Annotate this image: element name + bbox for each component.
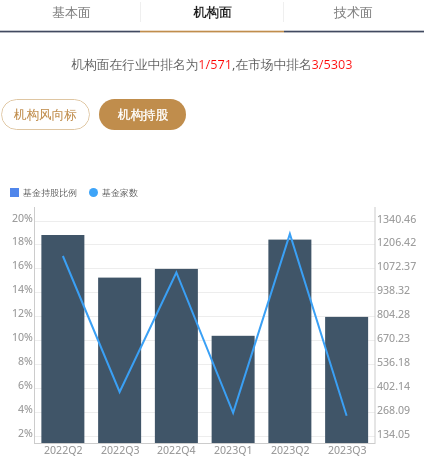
- staticText: 6%: [18, 378, 33, 392]
- staticText: 134.05: [377, 427, 411, 441]
- staticText: 18%: [12, 234, 33, 248]
- staticText: 1340.46: [377, 212, 417, 226]
- staticText: 670.23: [377, 331, 411, 345]
- staticText: 机构风向标: [14, 107, 77, 123]
- staticText: 基本面: [52, 4, 91, 20]
- staticText: 20%: [12, 211, 33, 225]
- staticText: 2022Q4: [157, 443, 196, 457]
- staticText: 技术面: [334, 4, 373, 20]
- staticText: 机构面: [193, 4, 232, 20]
- staticText: 8%: [18, 354, 33, 368]
- button[interactable]: 技术面: [283, 0, 424, 24]
- button[interactable]: 基本面: [0, 0, 142, 24]
- staticText: 14%: [12, 282, 33, 296]
- staticText: 1072.37: [377, 259, 417, 273]
- staticText: 基金家数: [102, 187, 138, 198]
- staticText: 2%: [18, 426, 33, 440]
- staticText: 10%: [12, 330, 33, 344]
- staticText: 机构持股: [118, 107, 168, 123]
- staticText: 2023Q2: [271, 443, 310, 457]
- staticText: 机构面在行业中排名为1/571,在市场中排名3/5303: [71, 55, 353, 71]
- staticText: 1206.42: [377, 235, 417, 249]
- staticText: 402.14: [377, 379, 411, 393]
- staticText: 938.32: [377, 283, 411, 297]
- staticText: 2022Q3: [101, 443, 140, 457]
- staticText: 2023Q3: [328, 443, 367, 457]
- button[interactable]: 机构持股: [99, 99, 186, 130]
- staticText: 536.18: [377, 355, 411, 369]
- staticText: 4%: [18, 402, 33, 416]
- staticText: 2022Q2: [44, 443, 83, 457]
- staticText: 268.09: [377, 403, 411, 417]
- staticText: 804.28: [377, 307, 411, 321]
- button[interactable]: 机构面: [142, 0, 283, 24]
- staticText: 2023Q1: [214, 443, 253, 457]
- staticText: 基金持股比例: [23, 187, 77, 198]
- staticText: 12%: [12, 306, 33, 320]
- staticText: 16%: [12, 258, 33, 272]
- button[interactable]: 机构风向标: [1, 99, 90, 130]
